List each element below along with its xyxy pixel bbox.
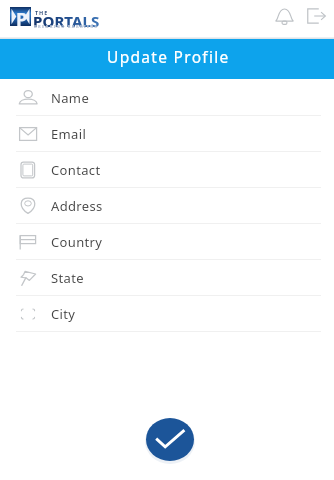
button[interactable]: Country: [0, 224, 334, 260]
staticText: Name: [51, 89, 90, 107]
staticText: Country: [51, 233, 103, 251]
staticText: P: [16, 7, 28, 26]
staticText: Update Profile: [107, 46, 230, 67]
button[interactable]: State: [0, 260, 334, 296]
button[interactable]: Email: [0, 116, 334, 152]
staticText: State: [51, 269, 84, 287]
staticText: THE: [35, 9, 49, 16]
button[interactable]: Notifications: [271, 3, 297, 29]
button[interactable]: City: [0, 296, 334, 332]
button[interactable]: Address: [0, 188, 334, 224]
button[interactable]: Contact: [0, 152, 334, 188]
staticText: BREAKING BARRIERS: [34, 24, 98, 29]
staticText: Contact: [51, 161, 101, 179]
button[interactable]: Save profile: [144, 416, 196, 464]
button[interactable]: Log out: [303, 3, 329, 29]
staticText: City: [51, 305, 76, 323]
staticText: Email: [51, 125, 87, 143]
staticText: Address: [51, 197, 103, 215]
button[interactable]: Name: [0, 80, 334, 116]
staticText: PORTALS: [33, 11, 100, 31]
